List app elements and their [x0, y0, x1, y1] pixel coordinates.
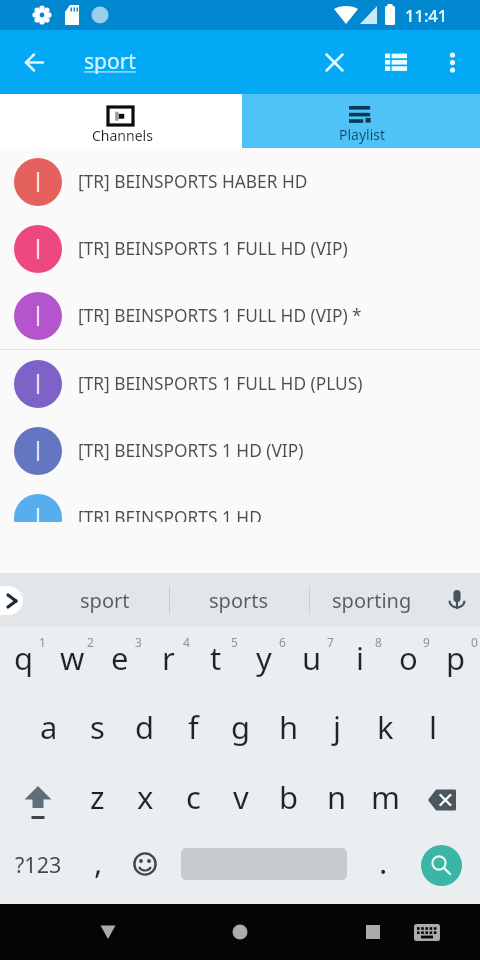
staticText: 5 [231, 634, 238, 650]
button[interactable]: [TR] BEINSPORTS 1 FULL HD (VIP) * [0, 282, 480, 349]
staticText: [TR] BEINSPORTS 1 FULL HD (VIP) * [78, 304, 362, 328]
button[interactable]: a [25, 695, 73, 765]
button[interactable]: g [217, 695, 265, 765]
button[interactable]: 8 [336, 627, 384, 695]
staticText: y [256, 637, 272, 679]
button[interactable]: Recent apps [343, 907, 403, 957]
staticText: z [90, 776, 105, 818]
button[interactable]: Emoji [122, 829, 168, 898]
staticText: 4 [183, 634, 190, 650]
staticText: 8 [375, 634, 382, 650]
button[interactable]: Expand suggestions [0, 586, 23, 615]
staticText: sports [209, 587, 269, 614]
button[interactable]: 0 [432, 627, 480, 695]
button[interactable]: sport [45, 573, 165, 627]
button[interactable]: 6 [240, 627, 288, 695]
staticText: n [327, 776, 347, 818]
staticText: d [135, 706, 155, 748]
button[interactable]: 4 [144, 627, 192, 695]
button[interactable]: Back [78, 907, 138, 957]
staticText: s [90, 706, 105, 748]
button[interactable]: [TR] BEINSPORTS 1 HD [0, 484, 480, 522]
staticText: [TR] BEINSPORTS 1 FULL HD (VIP) [78, 237, 348, 261]
staticText: [TR] BEINSPORTS 1 HD [78, 506, 262, 522]
staticText: [TR] BEINSPORTS HABER HD [78, 170, 308, 194]
button[interactable]: 3 [96, 627, 144, 695]
staticText: v [233, 776, 249, 818]
button[interactable]: 1 [0, 627, 48, 695]
staticText: Playlist [339, 125, 386, 144]
staticText: . [379, 841, 388, 883]
staticText: 6 [279, 634, 286, 650]
staticText: [TR] BEINSPORTS 1 FULL HD (PLUS) [78, 372, 363, 396]
button[interactable]: 7 [288, 627, 336, 695]
staticText: c [186, 776, 201, 818]
staticText: u [302, 637, 322, 679]
button[interactable]: Home [210, 907, 270, 957]
button[interactable]: sports [179, 573, 299, 627]
button[interactable]: 5 [192, 627, 240, 695]
button[interactable]: s [73, 695, 121, 765]
button[interactable]: [TR] BEINSPORTS 1 FULL HD (VIP) [0, 215, 480, 282]
staticText: m [371, 776, 400, 818]
staticText: ?123 [15, 850, 62, 879]
button[interactable]: Voice input [434, 577, 480, 623]
staticText: j [333, 706, 341, 748]
button[interactable]: Channels [0, 94, 242, 148]
button[interactable]: Playlist [242, 94, 480, 148]
button[interactable]: [TR] BEINSPORTS 1 FULL HD (PLUS) [0, 350, 480, 417]
button[interactable]: h [265, 695, 313, 765]
staticText: 3 [135, 634, 142, 650]
button[interactable]: 9 [384, 627, 432, 695]
button[interactable]: c [169, 765, 217, 835]
staticText: a [40, 706, 58, 748]
button[interactable]: v [217, 765, 265, 835]
staticText: 2 [87, 634, 94, 650]
button[interactable]: l [409, 695, 457, 765]
staticText: 0 [471, 634, 478, 650]
button[interactable]: x [121, 765, 169, 835]
button[interactable]: sporting [312, 573, 432, 627]
button[interactable]: Back [3, 31, 65, 93]
staticText: sporting [332, 587, 412, 614]
staticText: l [429, 706, 437, 748]
staticText: t [210, 637, 222, 679]
staticText: k [377, 706, 394, 748]
button[interactable]: Change view [368, 34, 424, 90]
button[interactable]: n [313, 765, 361, 835]
button[interactable]: Search [421, 845, 462, 886]
button[interactable]: ?123 [0, 835, 76, 904]
button[interactable]: More options [426, 36, 478, 88]
button[interactable]: j [313, 695, 361, 765]
button[interactable]: Shift [19, 785, 57, 823]
staticText: 11:41 [405, 4, 448, 26]
staticText: 7 [327, 634, 334, 650]
staticText: g [231, 706, 251, 748]
button[interactable]: f [169, 695, 217, 765]
staticText: f [188, 706, 199, 748]
button[interactable]: k [361, 695, 409, 765]
button[interactable]: [TR] BEINSPORTS 1 HD (VIP) [0, 417, 480, 484]
button[interactable]: . [360, 835, 406, 904]
staticText: , [94, 841, 103, 883]
staticText: [TR] BEINSPORTS 1 HD (VIP) [78, 439, 304, 463]
button[interactable]: Backspace [414, 776, 470, 824]
button[interactable]: Clear query [306, 34, 362, 90]
button[interactable]: Switch keyboard [409, 907, 445, 957]
button[interactable]: 2 [48, 627, 96, 695]
button[interactable]: , [76, 835, 120, 904]
staticText: x [137, 776, 154, 818]
button[interactable]: d [121, 695, 169, 765]
staticText: r [162, 637, 175, 679]
staticText: w [60, 637, 85, 679]
button[interactable]: [TR] BEINSPORTS HABER HD [0, 148, 480, 215]
button[interactable]: m [361, 765, 409, 835]
staticText: h [279, 706, 299, 748]
staticText: p [446, 637, 466, 679]
button[interactable]: z [73, 765, 121, 835]
staticText: 9 [423, 634, 430, 650]
staticText: e [111, 637, 129, 679]
button[interactable]: b [265, 765, 313, 835]
staticText: 1 [39, 634, 46, 650]
